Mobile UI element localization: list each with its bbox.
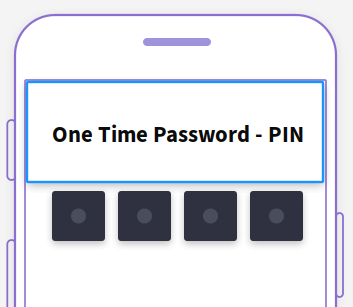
button[interactable]: PIN digit (52, 191, 105, 241)
button[interactable]: PIN digit (250, 191, 303, 241)
button[interactable]: PIN digit (118, 191, 171, 241)
button[interactable]: PIN digit (184, 191, 237, 241)
button[interactable]: One Time Password - PIN (27, 82, 323, 182)
staticText: One Time Password - PIN (52, 119, 304, 151)
